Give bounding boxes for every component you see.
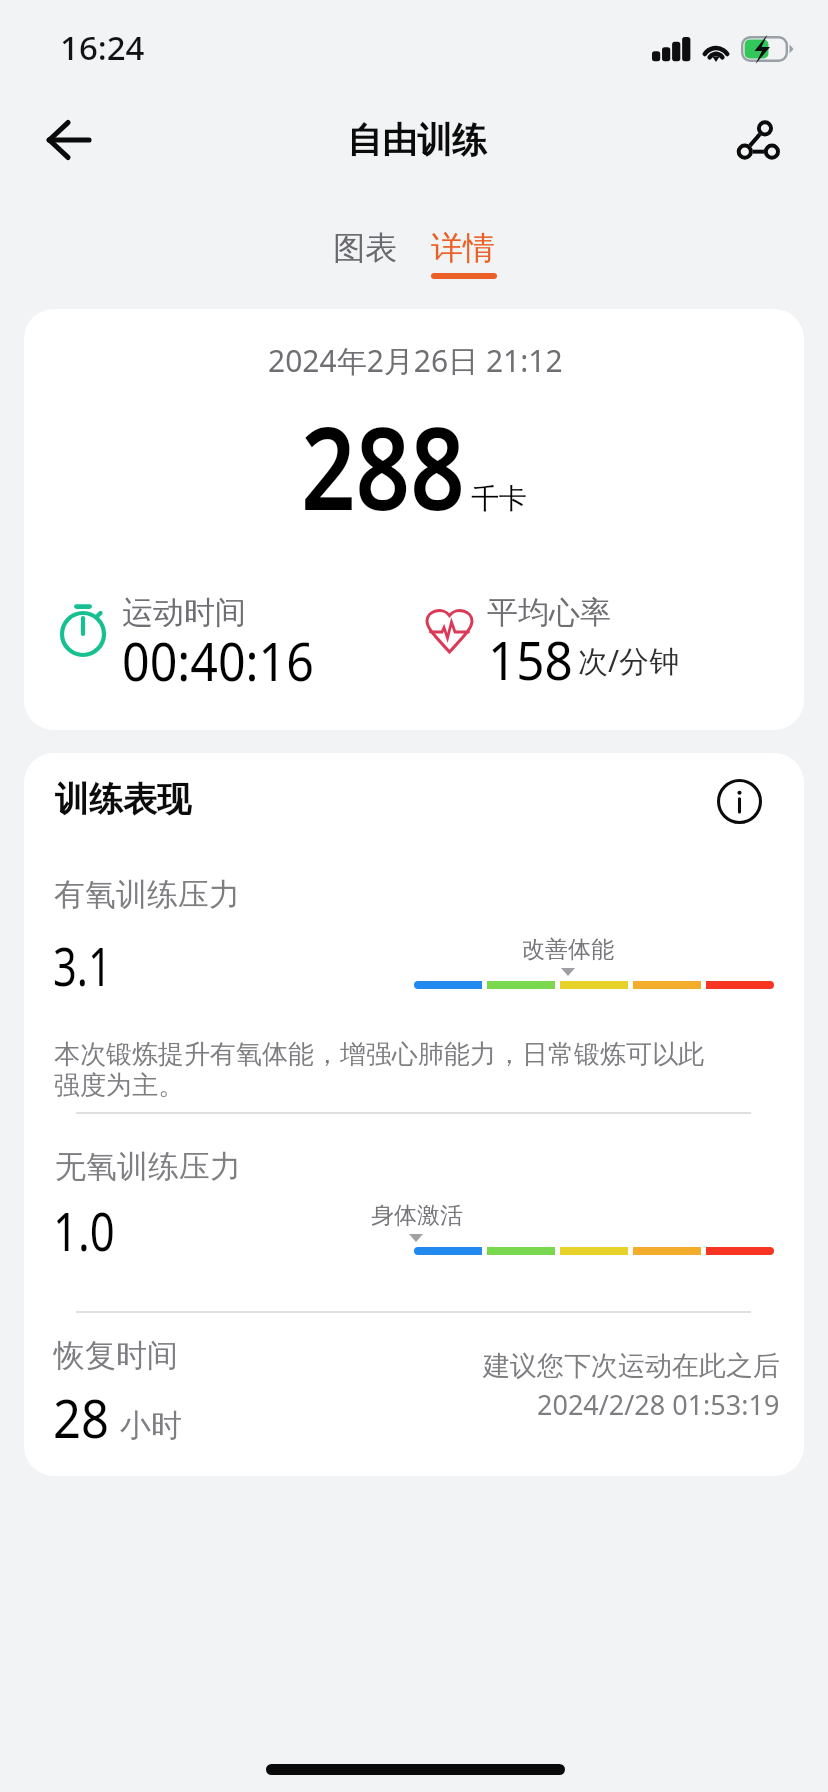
staticText: 小时 <box>120 1406 182 1445</box>
staticText: 本次锻炼提升有氧体能，增强心肺能力，日常锻炼可以此 强度为主。 <box>54 1038 704 1102</box>
button[interactable]: 详情 <box>411 214 515 286</box>
staticText: 16:24 <box>60 25 145 70</box>
staticText: 2024/2/28 01:53:19 <box>537 1386 780 1423</box>
staticText: 3.1 <box>53 930 112 1001</box>
button[interactable]: Back <box>28 100 108 180</box>
staticText: 28 <box>53 1382 109 1453</box>
staticText: 有氧训练压力 <box>54 875 240 914</box>
staticText: 158 <box>488 624 573 695</box>
staticText: 1.0 <box>53 1195 115 1266</box>
staticText: 改善体能 <box>522 935 614 964</box>
staticText: 2024年2月26日 21:12 <box>268 340 563 381</box>
staticText: 平均心率 <box>487 593 611 632</box>
staticText: 恢复时间 <box>54 1336 178 1375</box>
staticText: 自由训练 <box>347 118 487 162</box>
button[interactable]: Info <box>710 772 768 830</box>
staticText: 无氧训练压力 <box>55 1147 241 1186</box>
staticText: 详情 <box>431 228 495 268</box>
staticText: 图表 <box>333 228 397 268</box>
staticText: 运动时间 <box>122 593 246 632</box>
staticText: 288 <box>301 389 465 543</box>
staticText: 训练表现 <box>55 778 191 821</box>
button[interactable]: Share <box>718 100 798 180</box>
staticText: 身体激活 <box>371 1201 463 1230</box>
staticText: 建议您下次运动在此之后 <box>483 1349 780 1383</box>
staticText: 千卡 <box>471 481 527 516</box>
button[interactable]: 图表 <box>313 214 417 276</box>
staticText: 次/分钟 <box>578 640 680 681</box>
staticText: 00:40:16 <box>122 625 314 696</box>
